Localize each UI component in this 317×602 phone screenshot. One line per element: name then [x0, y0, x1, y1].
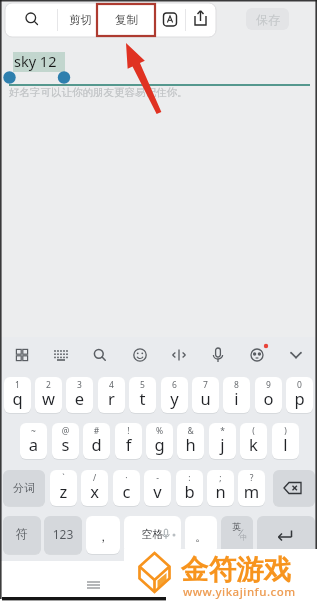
button[interactable]	[257, 516, 315, 554]
staticText: 2	[35, 379, 62, 391]
staticText: a	[20, 433, 47, 455]
staticText: 123	[44, 526, 82, 542]
staticText: m	[238, 480, 265, 502]
button[interactable]: 分词	[3, 470, 45, 506]
button[interactable]	[123, 340, 155, 372]
staticText: ·	[113, 472, 140, 484]
button[interactable]	[80, 574, 108, 594]
staticText: p	[286, 387, 313, 409]
staticText: 好名字可以让你的朋友更容易记住你。	[9, 86, 188, 99]
staticText: h	[177, 433, 204, 455]
staticText: www.yikajinfu.com	[183, 584, 296, 600]
staticText: 0	[286, 379, 313, 391]
button[interactable]: 9	[255, 377, 282, 413]
button[interactable]: (	[240, 423, 267, 459]
staticText: 1	[4, 379, 31, 391]
staticText: y	[161, 387, 188, 409]
button[interactable]: 5	[129, 377, 156, 413]
button[interactable]	[153, 3, 187, 37]
button[interactable]: ·	[113, 470, 140, 506]
staticText: c	[113, 480, 140, 502]
staticText: &	[177, 425, 204, 437]
staticText: 5	[129, 379, 156, 391]
button[interactable]	[280, 340, 312, 372]
staticText: )	[272, 425, 299, 437]
staticText: 金符游戏	[181, 553, 291, 588]
button[interactable]	[6, 340, 38, 372]
staticText: g	[146, 433, 173, 455]
staticText: *	[209, 425, 236, 437]
button[interactable]: 符	[3, 516, 41, 554]
button[interactable]: 1	[4, 377, 31, 413]
button[interactable]: *	[209, 423, 236, 459]
button[interactable]: 空格	[124, 516, 181, 554]
button[interactable]: 剪切	[58, 3, 102, 37]
button[interactable]: -	[144, 470, 171, 506]
button[interactable]: 4	[98, 377, 125, 413]
button[interactable]: 保存	[246, 8, 289, 30]
staticText: s	[52, 433, 79, 455]
button[interactable]: &	[177, 423, 204, 459]
button[interactable]	[162, 340, 194, 372]
button[interactable]: ~	[20, 423, 47, 459]
button[interactable]: %	[146, 423, 173, 459]
button[interactable]	[16, 3, 50, 37]
staticText: :	[176, 472, 203, 484]
button[interactable]: @	[52, 423, 79, 459]
button[interactable]	[84, 340, 116, 372]
button[interactable]: !	[115, 423, 142, 459]
staticText: @	[52, 425, 79, 437]
button[interactable]: ?	[238, 470, 265, 506]
button[interactable]: `	[50, 470, 77, 506]
staticText: r	[98, 387, 125, 409]
button[interactable]: 8	[223, 377, 250, 413]
button[interactable]: 123	[44, 516, 82, 554]
button[interactable]: ;	[207, 470, 234, 506]
button[interactable]: 6	[161, 377, 188, 413]
staticText: 英	[232, 521, 241, 532]
button[interactable]	[45, 340, 77, 372]
button[interactable]	[221, 516, 253, 554]
staticText: 3	[66, 379, 93, 391]
button[interactable]: #	[83, 423, 110, 459]
staticText: 6	[161, 379, 188, 391]
button[interactable]	[185, 3, 216, 37]
staticText: o	[255, 387, 282, 409]
staticText: d	[83, 433, 110, 455]
button[interactable]	[202, 340, 234, 372]
staticText: t	[129, 387, 156, 409]
button[interactable]: 复制	[102, 3, 150, 37]
button[interactable]: 。	[185, 516, 217, 554]
staticText: 4	[98, 379, 125, 391]
staticText: w	[35, 387, 62, 409]
staticText: `	[50, 472, 77, 484]
staticText: x	[81, 480, 108, 502]
staticText: l	[272, 433, 299, 455]
staticText: u	[192, 387, 219, 409]
button[interactable]	[241, 340, 273, 372]
staticText: k	[240, 433, 267, 455]
button[interactable]: 0	[286, 377, 313, 413]
staticText: n	[207, 480, 234, 502]
button[interactable]: /	[81, 470, 108, 506]
staticText: e	[66, 387, 93, 409]
button[interactable]: 2	[35, 377, 62, 413]
staticText: i	[223, 387, 250, 409]
staticText: #	[83, 425, 110, 437]
staticText: q	[4, 387, 31, 409]
staticText: -	[144, 472, 171, 484]
staticText: f	[115, 433, 142, 455]
staticText: ?	[238, 472, 265, 484]
button[interactable]: ，	[86, 516, 120, 554]
staticText: z	[50, 480, 77, 502]
staticText: ;	[207, 472, 234, 484]
button[interactable]	[273, 470, 315, 506]
button[interactable]: 3	[66, 377, 93, 413]
button[interactable]: )	[272, 423, 299, 459]
button[interactable]: :	[176, 470, 203, 506]
staticText: 9	[255, 379, 282, 391]
staticText: 8	[223, 379, 250, 391]
staticText: 保存	[256, 12, 280, 27]
button[interactable]: 7	[192, 377, 219, 413]
staticText: /	[81, 472, 108, 484]
